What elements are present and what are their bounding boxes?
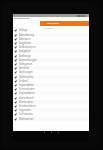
- staticText: Belegarten: [19, 62, 33, 66]
- button[interactable]: Dokumente: [13, 75, 89, 79]
- button[interactable]: Auftraege: [13, 54, 89, 58]
- staticText: Mahnwesen: [19, 117, 34, 121]
- button[interactable]: Angebote: [13, 41, 89, 45]
- button[interactable]: Importdaten: [13, 91, 89, 95]
- button[interactable]: Belegarten: [13, 62, 89, 66]
- staticText: Aufgaben: [19, 49, 31, 53]
- staticText: Neu anlegen: [47, 22, 60, 25]
- staticText: Exportdaten: [19, 83, 35, 87]
- button[interactable]: Kundendaten: [13, 104, 89, 108]
- button[interactable]: Kontenplan: [13, 100, 89, 104]
- button[interactable]: Mahnwesen: [13, 117, 89, 121]
- staticText: Einkauf: [19, 79, 29, 83]
- button[interactable]: Firmendaten: [13, 87, 89, 91]
- button[interactable]: Artikelstamm: [13, 45, 89, 49]
- staticText: Kassenbuch: [19, 96, 34, 100]
- button[interactable]: Buchungen: [13, 70, 89, 74]
- button[interactable]: Neu anlegen: [40, 21, 89, 26]
- staticText: Stammdaten: [14, 16, 30, 19]
- staticText: Firmendaten: [19, 87, 35, 91]
- button[interactable]: Lieferanten: [13, 112, 89, 116]
- button[interactable]: Abrechnung: [13, 33, 89, 37]
- button[interactable]: Aufgaben: [13, 49, 89, 53]
- button[interactable]: Ablage: [13, 28, 89, 32]
- button[interactable]: Auswertungen: [13, 58, 89, 62]
- staticText: Angebote: [19, 41, 31, 45]
- button[interactable]: Lagerorte: [13, 108, 89, 112]
- button[interactable]: Adressen: [13, 37, 89, 41]
- staticText: Buchungen: [19, 70, 34, 74]
- staticText: Artikelstamm: [19, 45, 36, 49]
- staticText: Dokumente: [19, 75, 34, 79]
- staticText: Kontenplan: [19, 100, 34, 104]
- staticText: Importdaten: [19, 91, 35, 95]
- button[interactable]: Back: [41, 130, 48, 134]
- button[interactable]: Exportdaten: [13, 83, 89, 87]
- button[interactable]: Kassenbuch: [13, 96, 89, 100]
- staticText: Lagerorte: [19, 108, 31, 112]
- staticText: Adressen: [19, 37, 31, 41]
- staticText: Berichte: [19, 66, 30, 70]
- button[interactable]: Berichte: [13, 66, 89, 70]
- button[interactable]: Recents: [55, 130, 62, 134]
- staticText: Auswertungen: [19, 58, 37, 62]
- button[interactable]: Home: [48, 130, 55, 134]
- staticText: Ablage: [19, 28, 28, 32]
- staticText: Lieferanten: [19, 112, 33, 116]
- staticText: Auswahl: [44, 26, 54, 29]
- button[interactable]: Einkauf: [13, 79, 89, 83]
- staticText: Kundendaten: [19, 104, 36, 108]
- staticText: Auftraege: [19, 54, 32, 58]
- staticText: Abrechnung: [19, 33, 34, 37]
